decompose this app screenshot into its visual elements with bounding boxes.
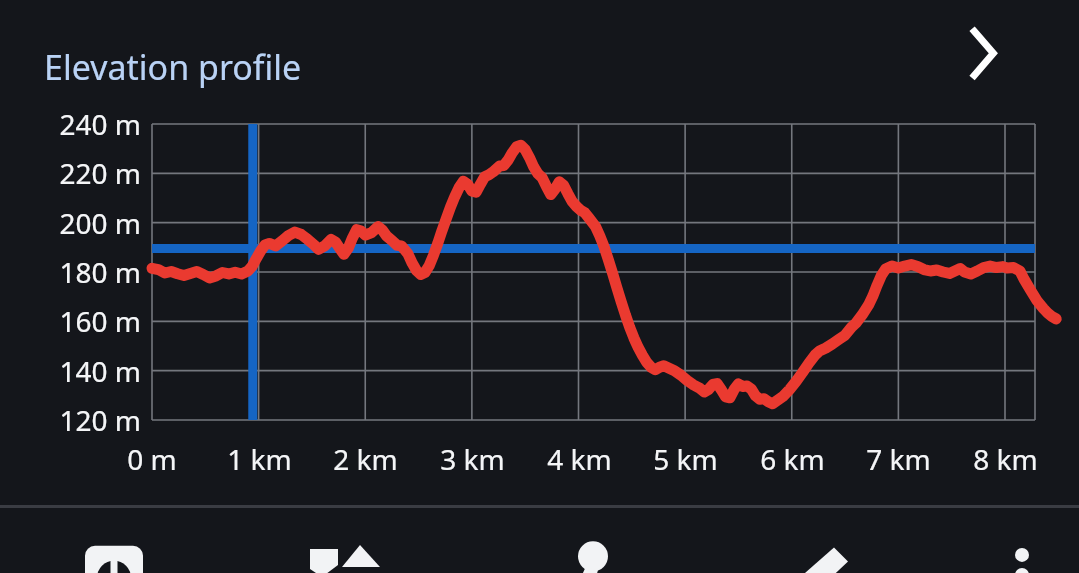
staticText: 0 m — [127, 440, 177, 478]
button[interactable]: Open elevation profile — [955, 20, 1023, 88]
staticText: 120 m — [59, 401, 141, 439]
staticText: 6 km — [760, 440, 825, 478]
staticText: 140 m — [59, 352, 141, 390]
staticText: 3 km — [440, 440, 505, 478]
staticText: 220 m — [59, 154, 141, 192]
staticText: 2 km — [333, 440, 398, 478]
staticText: 200 m — [59, 204, 141, 242]
staticText: 240 m — [59, 105, 141, 143]
staticText: 8 km — [973, 440, 1038, 478]
staticText: 160 m — [59, 302, 141, 340]
button[interactable]: Map — [81, 508, 147, 573]
staticText: 4 km — [547, 440, 612, 478]
staticText: 1 km — [227, 440, 292, 478]
button[interactable]: Plan — [789, 508, 855, 573]
staticText: Elevation profile — [44, 44, 302, 90]
staticText: 7 km — [866, 440, 931, 478]
staticText: 180 m — [59, 253, 141, 291]
button[interactable]: More options — [989, 508, 1055, 573]
button[interactable]: Elevation profile — [0, 0, 1079, 105]
button[interactable]: Profile — [557, 508, 623, 573]
button[interactable]: Routes — [311, 508, 377, 573]
staticText: 5 km — [653, 440, 718, 478]
